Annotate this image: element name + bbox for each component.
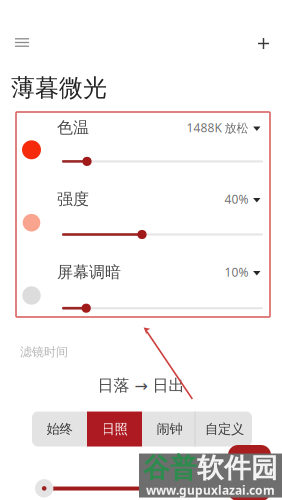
staticText: 40% (225, 191, 249, 207)
button[interactable]: Add (247, 28, 279, 58)
staticText: 自定义 (205, 421, 244, 437)
button[interactable]: 自定义 (197, 411, 252, 446)
staticText: 10% (225, 264, 249, 280)
button[interactable]: 始终 (32, 411, 87, 446)
staticText: 日落 → 日出 (97, 376, 184, 395)
button[interactable]: 闹钟 (142, 411, 197, 446)
staticText: 闹钟 (156, 421, 182, 437)
staticText: 色温 (57, 118, 89, 138)
staticText: 薄暮微光 (11, 73, 107, 103)
staticText: 日照 (101, 421, 127, 437)
staticText: 滤镜时间 (20, 345, 68, 359)
button[interactable]: Menu (5, 27, 39, 57)
staticText: 谷普 (143, 452, 197, 484)
staticText: 始终 (46, 421, 72, 437)
staticText: 软件园 (197, 452, 278, 484)
staticText: 强度 (57, 189, 89, 209)
staticText: www.gupuxlazai.com (146, 482, 275, 498)
button[interactable]: 日照 (87, 411, 142, 446)
staticText: 屏幕调暗 (57, 262, 121, 282)
staticText: 1488K 放松 (187, 120, 249, 136)
